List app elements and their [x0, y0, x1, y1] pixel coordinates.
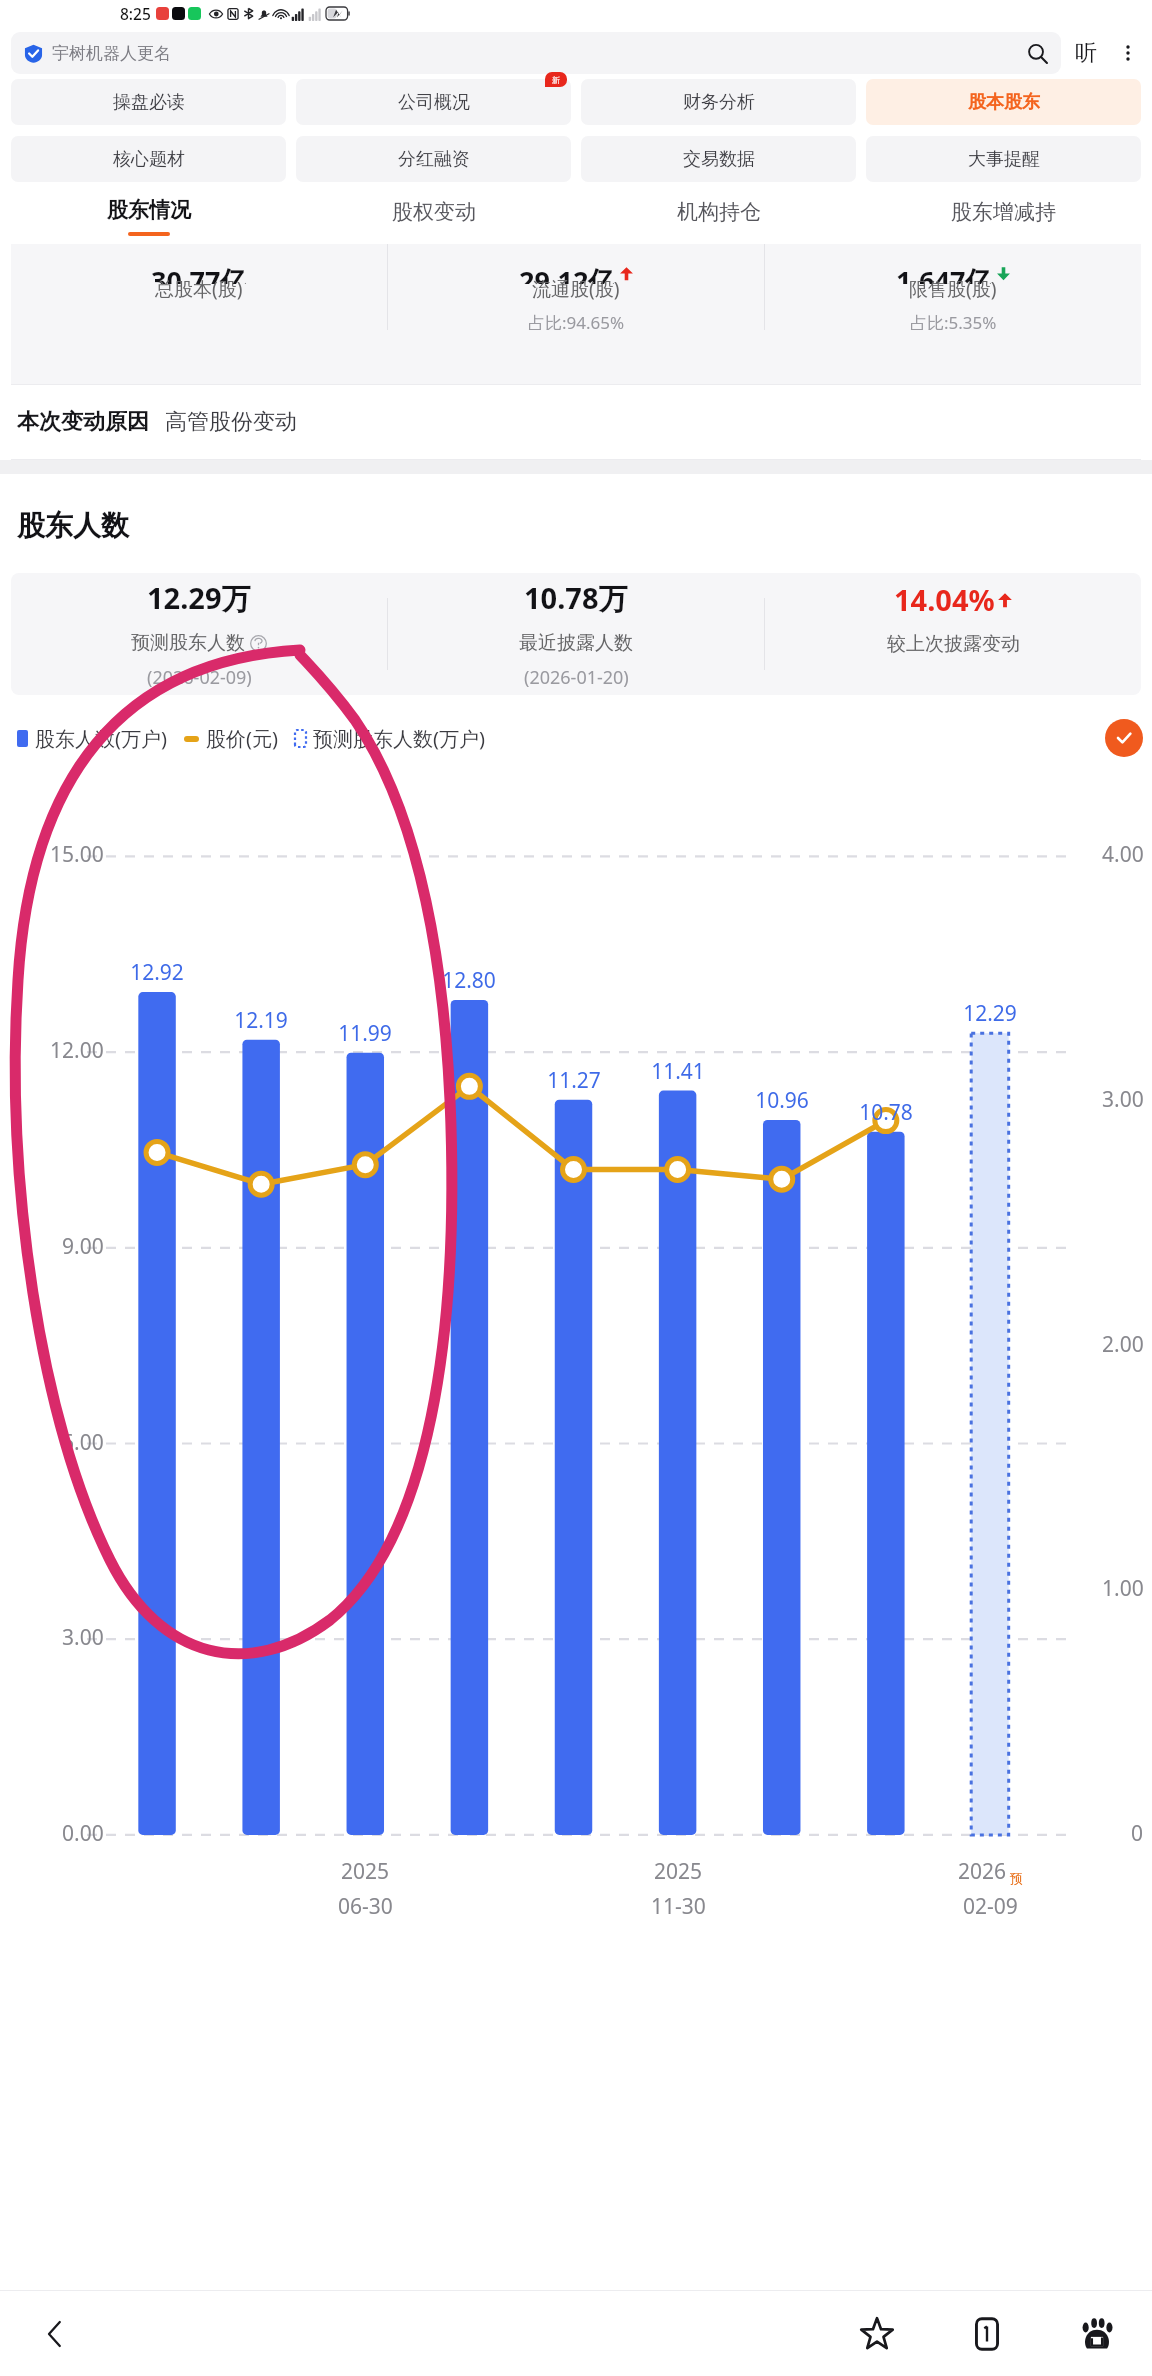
staticText: 听	[1075, 39, 1097, 67]
staticText: 核心题材	[113, 148, 185, 171]
staticText: 占比:5.35%	[910, 311, 997, 330]
staticText: 股本股东	[968, 91, 1040, 114]
staticText: 4.00	[1102, 840, 1144, 869]
staticText: 股东人数	[17, 508, 129, 543]
staticText: 流通股(股)	[532, 276, 620, 302]
staticText: 2025	[341, 1857, 390, 1886]
staticText: 预	[1010, 1870, 1023, 1886]
button[interactable]: 股东情况	[6, 182, 291, 244]
staticText: 11.41	[651, 1057, 705, 1086]
staticText: (2026-01-20)	[524, 665, 629, 690]
button[interactable]: 股权变动	[291, 182, 576, 244]
staticText: 02-09	[963, 1892, 1018, 1921]
button[interactable]: 分红融资	[296, 136, 571, 182]
staticText: 预测股东人数(万户)	[313, 725, 485, 752]
button[interactable]: 预测股东人数(万户)	[295, 725, 485, 752]
staticText: 操盘必读	[113, 91, 185, 114]
staticText: 机构持仓	[677, 199, 761, 225]
staticText: 限售股(股)	[909, 276, 997, 302]
staticText: 总股本(股)	[155, 276, 243, 302]
staticText: 0	[1131, 1819, 1144, 1848]
staticText: 10.96	[755, 1086, 809, 1115]
staticText: 12.29	[963, 999, 1017, 1028]
staticText: 11-30	[651, 1892, 706, 1921]
staticText: 高管股份变动	[165, 408, 297, 436]
button[interactable]: 宇树机器人更名	[11, 32, 1061, 74]
staticText: 宇树机器人更名	[52, 43, 171, 64]
other: Help	[250, 635, 267, 652]
button[interactable]: 股价(元)	[184, 725, 278, 752]
staticText: 股东人数(万户)	[35, 725, 167, 752]
staticText: 股东增减持	[951, 199, 1056, 225]
staticText: 2.00	[1102, 1330, 1144, 1359]
other: Search	[1027, 43, 1048, 64]
staticText: 占比:94.65%	[528, 311, 625, 330]
button[interactable]: More options	[1111, 27, 1145, 79]
staticText: 15.00	[50, 840, 104, 869]
button[interactable]: Back	[0, 2291, 110, 2376]
staticText: 3.00	[62, 1623, 104, 1652]
staticText: 29.12亿	[519, 262, 616, 284]
staticText: 11.27	[547, 1066, 601, 1095]
staticText: 新	[552, 75, 560, 85]
staticText: 股价(元)	[206, 725, 278, 752]
staticText: 30.77亿	[151, 262, 248, 284]
staticText: 06-30	[338, 1892, 393, 1921]
staticText: 12.00	[50, 1036, 104, 1065]
staticText: 较上次披露变动	[887, 632, 1020, 656]
staticText: 0.00	[62, 1819, 104, 1848]
button[interactable]: 交易数据	[581, 136, 856, 182]
button[interactable]: 操盘必读	[11, 79, 286, 125]
staticText: 财务分析	[683, 91, 755, 114]
staticText: 9.00	[62, 1232, 104, 1261]
staticText: 10.78万	[524, 578, 628, 618]
staticText: (2026-02-09)	[147, 665, 252, 690]
staticText: 8:25	[120, 3, 151, 24]
staticText: 12.92	[130, 958, 184, 987]
staticText: 预测股东人数	[131, 631, 245, 655]
button[interactable]: Confirm	[1105, 719, 1143, 757]
staticText: 分红融资	[398, 148, 470, 171]
button[interactable]: 机构持仓	[576, 182, 861, 244]
button[interactable]: Baidu home	[1042, 2291, 1152, 2376]
staticText: 2026	[958, 1857, 1007, 1886]
staticText: 1.647亿	[896, 262, 993, 284]
staticText: 股权变动	[392, 199, 476, 225]
button[interactable]: Tabs: 1 open	[932, 2291, 1042, 2376]
staticText: 12.19	[234, 1006, 288, 1035]
staticText: 14.04%	[894, 580, 995, 619]
button[interactable]: Favorite	[822, 2291, 932, 2376]
staticText: 6.00	[62, 1428, 104, 1457]
staticText: 本次变动原因	[17, 408, 149, 436]
button[interactable]: 股东人数(万户)	[17, 725, 167, 752]
button[interactable]: 股东增减持	[861, 182, 1146, 244]
staticText: 2025	[654, 1857, 703, 1886]
button[interactable]: 听	[1061, 27, 1111, 79]
staticText: 交易数据	[683, 148, 755, 171]
staticText: 公司概况	[398, 91, 470, 114]
button[interactable]: 核心题材	[11, 136, 286, 182]
staticText: 3.00	[1102, 1085, 1144, 1114]
button[interactable]: 大事提醒	[866, 136, 1141, 182]
staticText: 最近披露人数	[519, 631, 633, 655]
staticText: 10.78	[859, 1098, 913, 1127]
staticText: 12.29万	[147, 578, 251, 618]
staticText: 大事提醒	[968, 148, 1040, 171]
button[interactable]: 股本股东	[866, 79, 1141, 125]
staticText: 股东情况	[107, 197, 191, 223]
staticText: 12.80	[442, 966, 496, 995]
staticText: 1.00	[1102, 1574, 1144, 1603]
staticText: 11.99	[338, 1019, 392, 1048]
button[interactable]: 公司概况	[296, 79, 571, 125]
button[interactable]: 财务分析	[581, 79, 856, 125]
